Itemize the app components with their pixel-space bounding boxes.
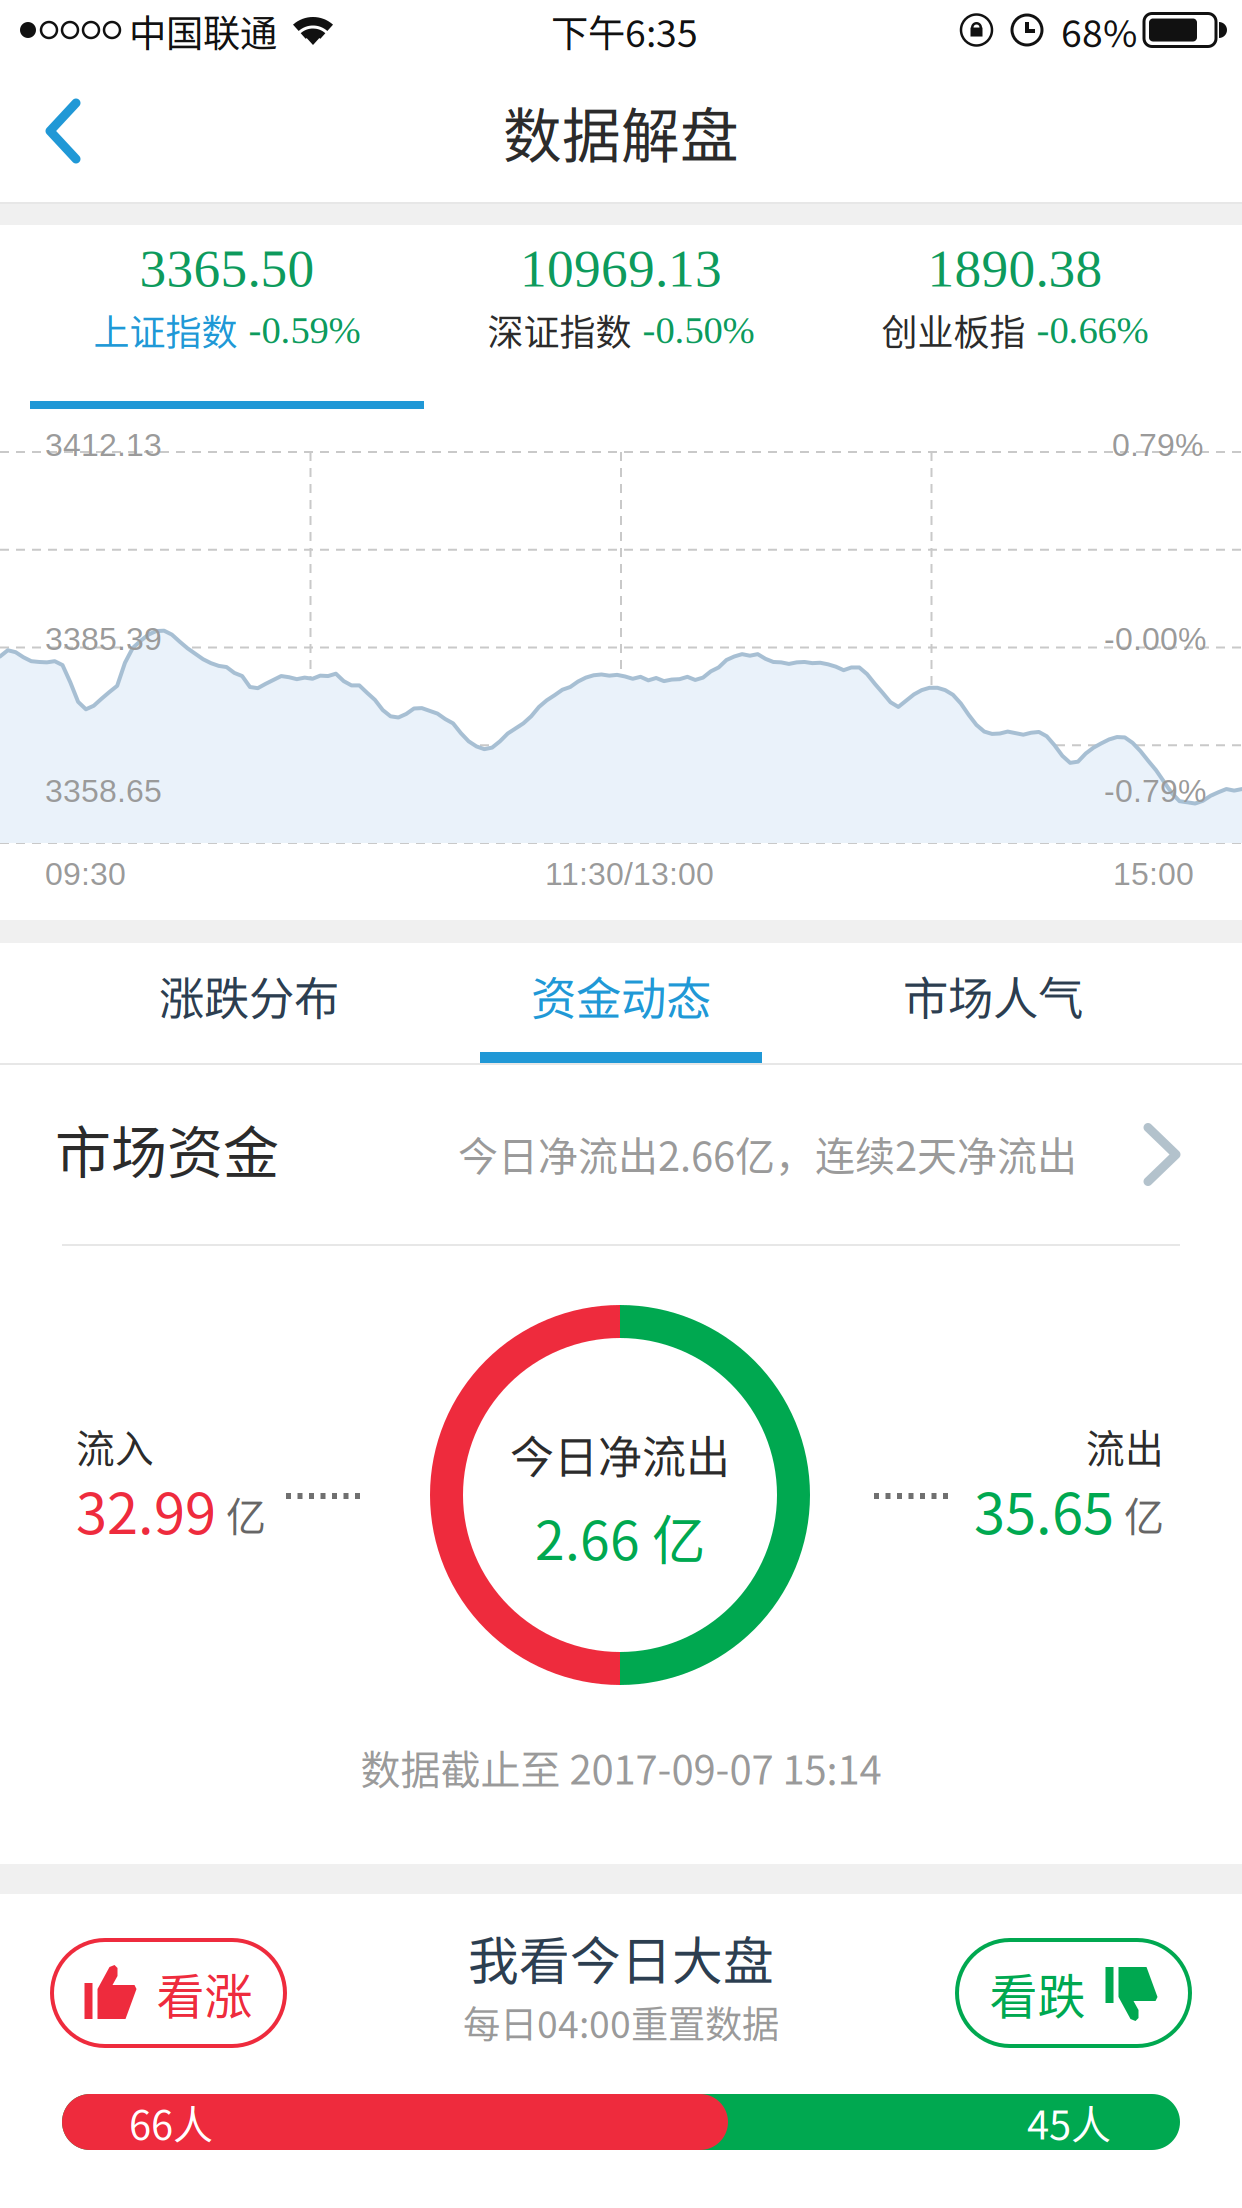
staticText: 66人 [129, 2093, 213, 2151]
button[interactable]: 市场资金 [0, 1065, 1242, 1244]
staticText: 3412.13 [45, 427, 162, 463]
staticText: 11:30/13:00 [545, 856, 714, 892]
staticText: 涨跌分布 [159, 963, 339, 1029]
staticText: 68% [1061, 4, 1137, 58]
staticText: 10969.13 [520, 239, 722, 298]
staticText: 我看今日大盘 [468, 1921, 774, 1994]
staticText: 3385.39 [45, 621, 162, 657]
staticText: 今日净流出 [510, 1422, 730, 1486]
staticText: 09:30 [45, 856, 126, 892]
staticText: 1890.38 [927, 239, 1102, 298]
staticText: 15:00 [1113, 856, 1194, 892]
staticText: 0.79% [1112, 427, 1203, 463]
button[interactable]: 涨跌分布 [63, 943, 435, 1063]
staticText: 亿 [1124, 1485, 1164, 1543]
staticText: 下午6:35 [551, 4, 698, 58]
staticText: 每日04:00重置数据 [463, 1995, 779, 2049]
staticText: -0.00% [1104, 621, 1206, 657]
staticText: 45人 [1027, 2093, 1111, 2151]
staticText: -0.66% [1036, 309, 1148, 351]
staticText: 3365.50 [139, 239, 314, 298]
staticText: 35.65 [974, 1469, 1114, 1550]
staticText: 数据截止至 2017-09-07 15:14 [360, 1738, 881, 1796]
button[interactable]: 返回 [0, 68, 120, 194]
staticText: 亿 [226, 1485, 266, 1543]
button[interactable]: 3365.50 [30, 225, 424, 409]
staticText: 创业板指 [881, 304, 1025, 356]
staticText: 上证指数 [93, 304, 237, 356]
staticText: 流入 [76, 1418, 154, 1474]
staticText: 流出 [1086, 1418, 1164, 1474]
staticText: -0.50% [642, 309, 754, 351]
staticText: 市场人气 [903, 963, 1083, 1029]
button[interactable]: 资金动态 [435, 943, 807, 1063]
staticText: 数据解盘 [503, 89, 739, 174]
staticText: 深证指数 [487, 304, 631, 356]
staticText: 看涨 [156, 1958, 252, 2028]
staticText: 资金动态 [531, 963, 711, 1029]
staticText: 今日净流出2.66亿，连续2天净流出 [458, 1124, 1077, 1182]
button[interactable]: 看跌 [957, 1940, 1190, 2046]
staticText: -0.59% [248, 309, 360, 351]
staticText: 3358.65 [45, 773, 162, 809]
button[interactable]: 看涨 [52, 1940, 285, 2046]
staticText: -0.79% [1104, 773, 1206, 809]
staticText: 中国联通 [129, 4, 277, 58]
button[interactable]: 10969.13 [424, 225, 818, 409]
button[interactable]: 1890.38 [818, 225, 1212, 409]
staticText: 32.99 [76, 1469, 216, 1550]
staticText: 2.66 亿 [535, 1498, 705, 1575]
staticText: 看跌 [989, 1958, 1085, 2028]
button[interactable]: 市场人气 [807, 943, 1179, 1063]
staticText: 市场资金 [55, 1108, 279, 1189]
